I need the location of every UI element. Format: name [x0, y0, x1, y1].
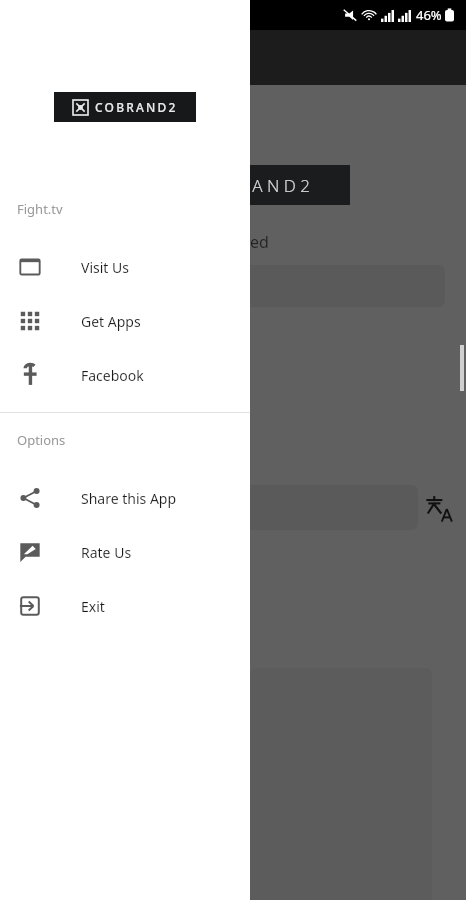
- button[interactable]: Share this App: [0, 471, 250, 525]
- staticText: Share this App: [81, 489, 177, 508]
- staticText: Facebook: [81, 366, 144, 385]
- other: Facebook: [19, 364, 41, 386]
- other: Visit Us: [19, 256, 41, 278]
- other: Get Apps: [19, 310, 41, 332]
- staticText: Fight.tv: [17, 200, 63, 218]
- staticText: COBRAND2: [95, 99, 178, 115]
- staticText: Options: [17, 431, 66, 449]
- staticText: Nothing Selected: [140, 231, 269, 253]
- staticText: Get Apps: [81, 312, 141, 331]
- other: Share this App: [19, 487, 41, 509]
- button[interactable]: Exit: [0, 579, 250, 633]
- button[interactable]: Get Apps: [0, 294, 250, 348]
- staticText: 46%: [416, 6, 442, 24]
- staticText: Rate Us: [81, 543, 132, 562]
- button[interactable]: Rate Us: [0, 525, 250, 579]
- staticText: Visit Us: [81, 258, 129, 277]
- button[interactable]: Facebook: [0, 348, 250, 402]
- staticText: Exit: [81, 597, 105, 616]
- other: Rate Us: [19, 541, 41, 563]
- staticText: C O B R A N D 2: [190, 174, 311, 197]
- button[interactable]: Visit Us: [0, 240, 250, 294]
- other: Exit: [19, 595, 41, 617]
